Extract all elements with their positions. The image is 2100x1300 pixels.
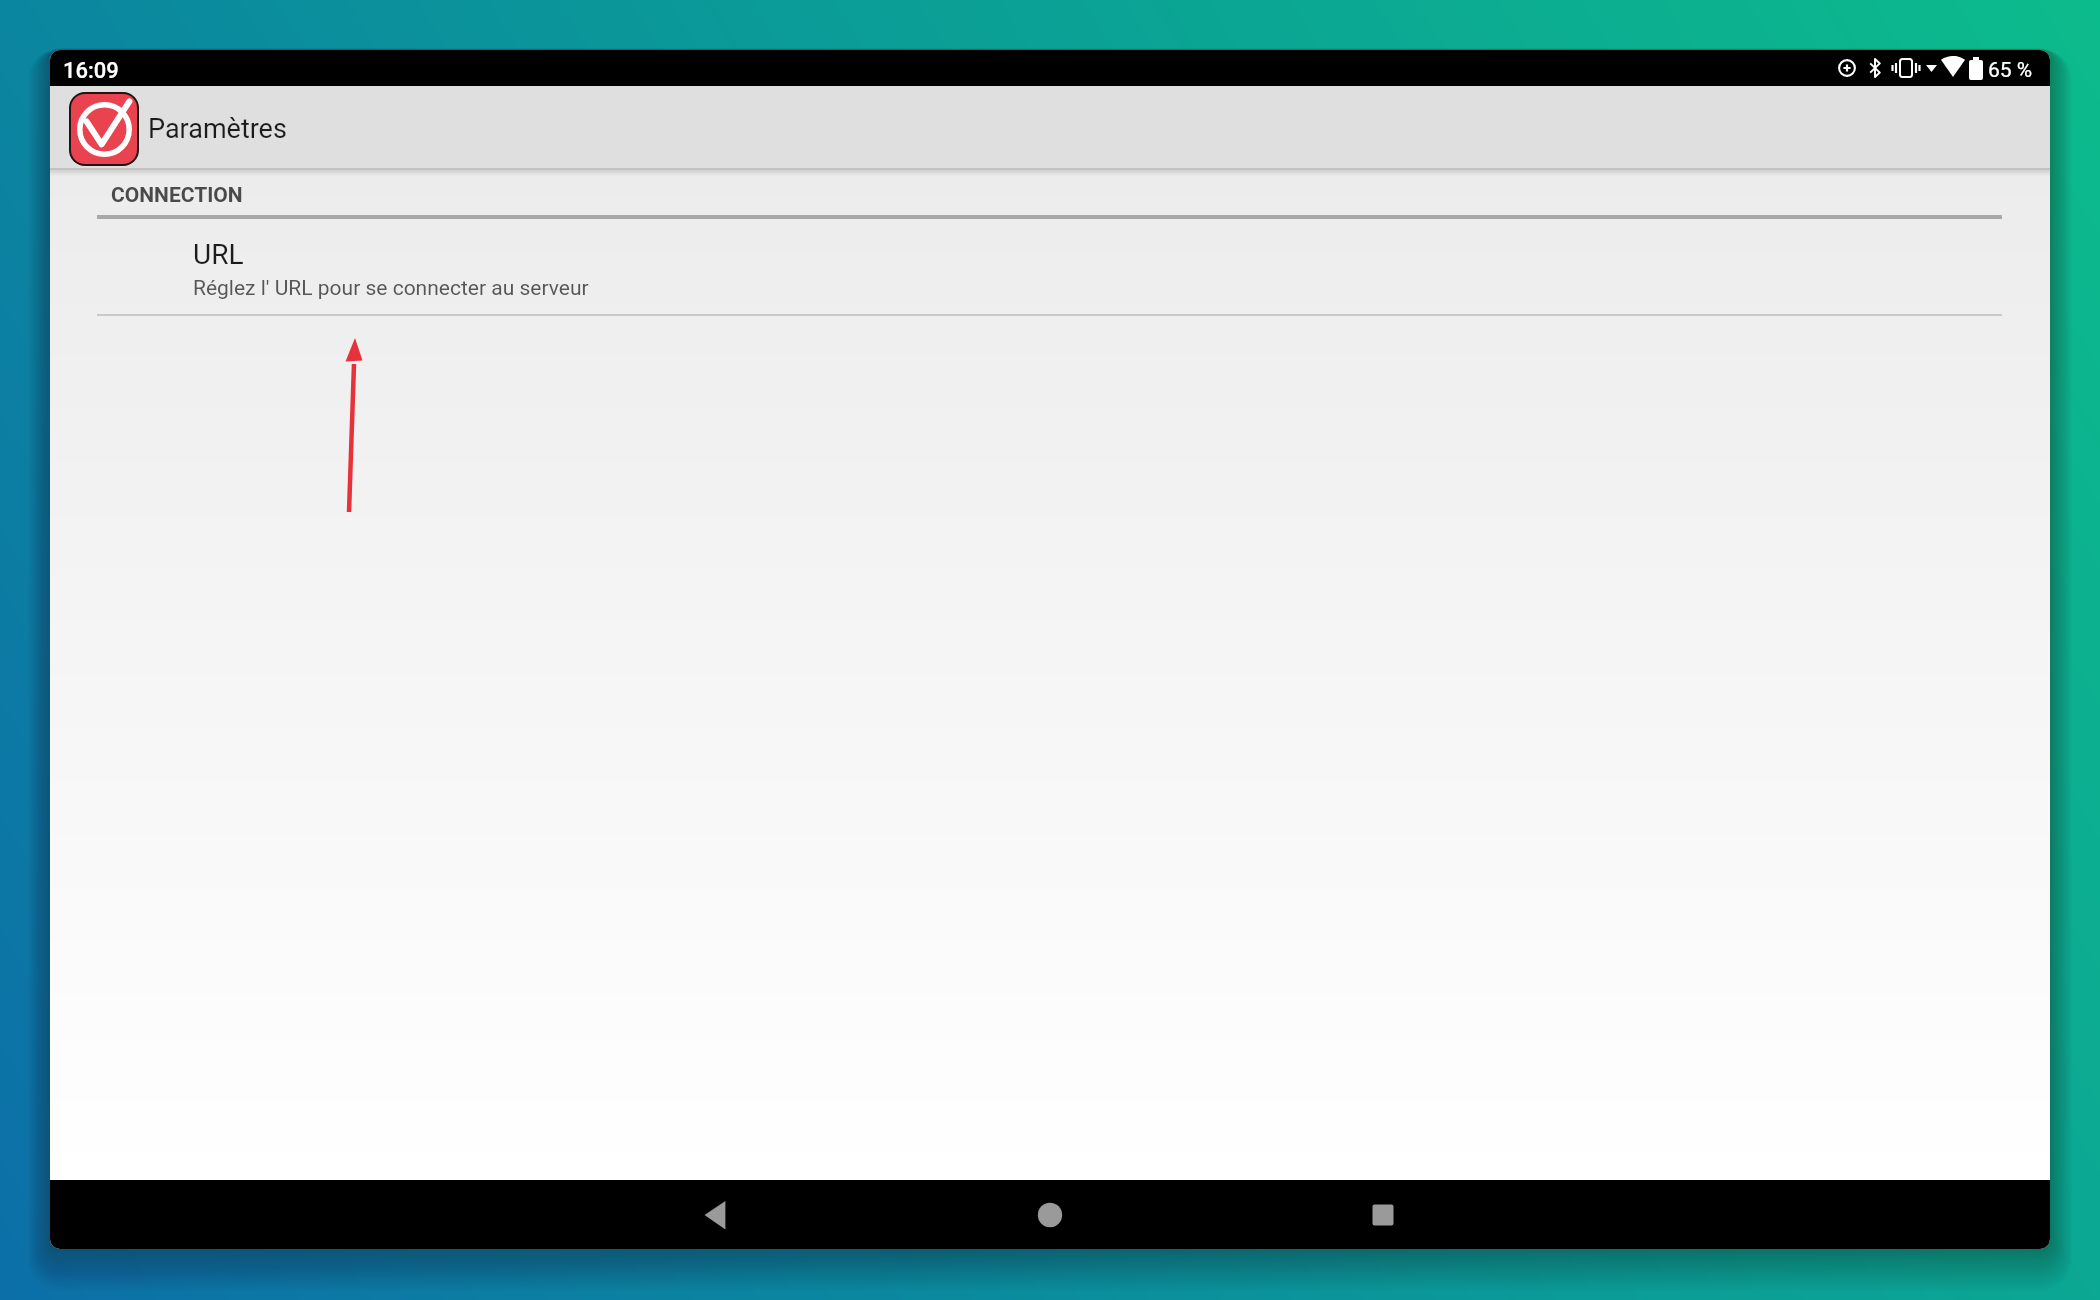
button[interactable] xyxy=(690,1190,740,1240)
staticText: Paramètres xyxy=(148,113,287,145)
staticText: CONNECTION xyxy=(111,183,243,208)
staticText: 65 % xyxy=(1988,58,2033,83)
button[interactable] xyxy=(69,92,139,166)
button[interactable] xyxy=(1358,1190,1408,1240)
staticText: Réglez l' URL pour se connecter au serve… xyxy=(193,276,589,301)
button[interactable]: URL xyxy=(170,228,2010,314)
staticText: 16:09 xyxy=(63,58,119,84)
staticText: URL xyxy=(193,238,244,271)
button[interactable] xyxy=(1025,1190,1075,1240)
